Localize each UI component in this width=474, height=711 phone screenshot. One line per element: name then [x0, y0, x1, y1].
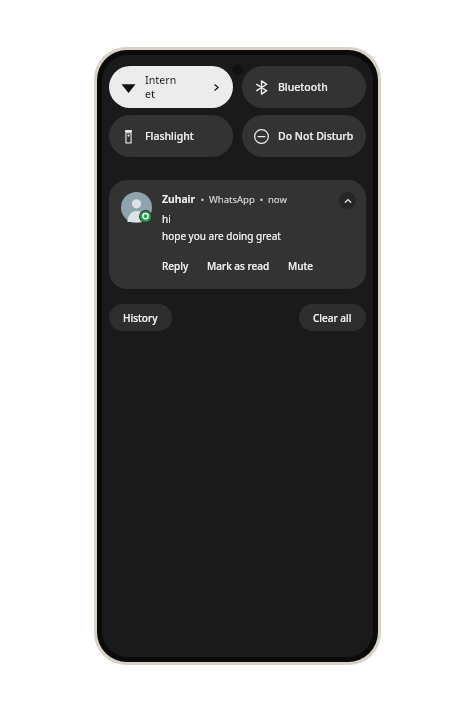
staticText: Clear all [313, 311, 352, 325]
staticText: Flashlight [145, 129, 194, 143]
button[interactable]: Flashlight [109, 115, 233, 157]
button[interactable]: Zuhair [109, 180, 366, 289]
staticText: • [196, 193, 209, 205]
staticText: Internet [145, 73, 178, 101]
button[interactable]: Clear all [299, 304, 366, 331]
staticText: Do Not Disturb [278, 129, 354, 143]
staticText: History [123, 311, 158, 325]
staticText: Mark as read [207, 259, 270, 273]
button[interactable]: Do Not Disturb [242, 115, 366, 157]
staticText: Bluetooth [278, 80, 328, 94]
staticText: WhatsApp [209, 193, 255, 206]
staticText: • [255, 193, 268, 205]
button[interactable]: Reply [162, 257, 189, 275]
button[interactable]: Internet [109, 66, 233, 108]
button[interactable]: Mark as read [207, 257, 270, 275]
staticText: Zuhair [162, 192, 196, 206]
staticText: hi [162, 212, 171, 226]
button[interactable]: Bluetooth [242, 66, 366, 108]
staticText: Mute [288, 259, 314, 273]
staticText: now [268, 193, 287, 206]
staticText: hope you are doing great [162, 229, 281, 243]
staticText: Reply [162, 259, 189, 273]
button[interactable]: Collapse notification [339, 192, 356, 209]
button[interactable]: Mute [288, 257, 314, 275]
button[interactable]: History [109, 304, 172, 331]
